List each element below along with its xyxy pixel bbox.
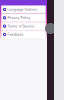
button[interactable]: Feedback: [1, 30, 46, 38]
staticText: Privacy Policy: [7, 16, 30, 20]
staticText: Terms of Service: [7, 24, 34, 28]
button[interactable]: Language Options: [1, 5, 46, 13]
button[interactable]: Privacy Policy: [1, 14, 46, 22]
staticText: Language Options: [7, 7, 37, 11]
button[interactable]: Terms of Service: [1, 22, 46, 30]
staticText: Feedback: [7, 32, 23, 36]
